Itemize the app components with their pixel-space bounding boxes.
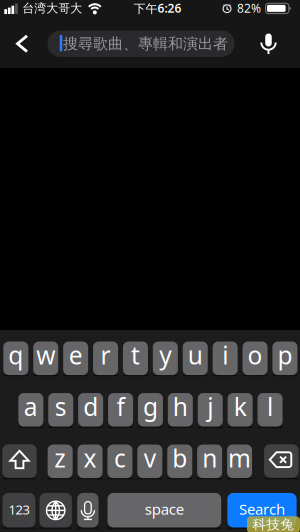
button[interactable]: u: [183, 342, 208, 375]
button[interactable]: Delete: [264, 444, 299, 478]
button[interactable]: Shift: [2, 444, 37, 478]
staticText: Search: [239, 499, 285, 519]
button[interactable]: e: [63, 342, 88, 375]
staticText: j: [207, 390, 213, 423]
staticText: n: [202, 441, 217, 475]
button[interactable]: 搜尋歌曲、專輯和演出者: [47, 30, 234, 57]
staticText: 搜尋歌曲、專輯和演出者: [63, 34, 228, 53]
staticText: s: [55, 390, 67, 423]
staticText: m: [228, 441, 251, 475]
staticText: 下午6:26: [133, 0, 181, 16]
staticText: 台湾大哥大: [22, 1, 82, 16]
staticText: 82%: [237, 0, 261, 16]
staticText: z: [54, 441, 66, 475]
button[interactable]: g: [138, 393, 163, 427]
staticText: f: [116, 390, 124, 423]
button[interactable]: c: [107, 445, 132, 478]
button[interactable]: h: [168, 393, 193, 427]
button[interactable]: z: [48, 445, 73, 478]
staticText: x: [83, 441, 96, 475]
button[interactable]: t: [123, 342, 148, 375]
button[interactable]: n: [197, 445, 222, 478]
button[interactable]: s: [48, 393, 73, 427]
button[interactable]: d: [78, 393, 103, 427]
staticText: h: [173, 390, 188, 423]
button[interactable]: w: [33, 342, 58, 375]
button[interactable]: m: [227, 445, 252, 478]
button[interactable]: q: [3, 342, 28, 375]
staticText: d: [83, 390, 98, 423]
button[interactable]: b: [167, 445, 192, 478]
staticText: u: [188, 338, 203, 372]
staticText: t: [131, 338, 140, 372]
staticText: o: [247, 338, 262, 372]
staticText: p: [277, 338, 292, 372]
button[interactable]: p: [272, 342, 297, 375]
staticText: k: [234, 390, 247, 423]
staticText: y: [159, 338, 171, 372]
button[interactable]: space: [107, 493, 221, 527]
button[interactable]: x: [77, 445, 102, 478]
button[interactable]: v: [137, 445, 162, 478]
staticText: 科技兔: [252, 516, 294, 532]
staticText: space: [145, 499, 184, 519]
button[interactable]: j: [198, 393, 223, 427]
staticText: c: [114, 441, 126, 475]
staticText: b: [172, 441, 187, 475]
button[interactable]: f: [108, 393, 133, 427]
staticText: q: [8, 338, 23, 372]
button[interactable]: a: [18, 393, 43, 427]
button[interactable]: Dictation: [77, 493, 98, 527]
button[interactable]: Search: [227, 493, 297, 527]
button[interactable]: l: [258, 393, 283, 427]
button[interactable]: o: [242, 342, 267, 375]
button[interactable]: r: [93, 342, 118, 375]
staticText: i: [222, 338, 228, 372]
staticText: 123: [8, 500, 29, 518]
staticText: e: [69, 338, 83, 372]
staticText: l: [267, 390, 273, 423]
staticText: a: [24, 390, 38, 423]
button[interactable]: Dictate: [254, 27, 282, 57]
button[interactable]: i: [213, 342, 238, 375]
staticText: v: [144, 441, 156, 475]
button[interactable]: k: [228, 393, 253, 427]
staticText: w: [36, 338, 55, 372]
staticText: g: [143, 390, 158, 423]
button[interactable]: Back: [0, 0, 300, 532]
button[interactable]: Next keyboard: [39, 493, 72, 527]
button[interactable]: 123: [2, 493, 35, 527]
staticText: r: [100, 338, 110, 372]
button[interactable]: y: [153, 342, 178, 375]
